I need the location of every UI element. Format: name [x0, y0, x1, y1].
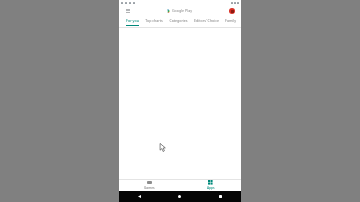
button[interactable]: Recents	[200, 191, 241, 202]
button[interactable]: Family	[222, 16, 239, 27]
staticText: For you	[126, 18, 139, 23]
staticText: Categories	[169, 18, 188, 23]
staticText: Family	[225, 18, 236, 23]
button[interactable]: Back	[119, 191, 159, 202]
button[interactable]: Apps	[180, 179, 241, 191]
button[interactable]: Home	[159, 191, 200, 202]
button[interactable]: Games	[119, 179, 180, 191]
button[interactable]: Open navigation menu	[125, 8, 130, 13]
button[interactable]: Editors' Choice	[191, 16, 222, 27]
staticText: Editors' Choice	[194, 18, 219, 23]
button[interactable]: Categories	[166, 16, 191, 27]
staticText: Top charts	[145, 18, 163, 23]
staticText: Apps	[207, 186, 215, 190]
button[interactable]: For you	[123, 16, 142, 27]
button[interactable]: Top charts	[142, 16, 166, 27]
staticText: Games	[144, 186, 155, 190]
staticText: Google Play	[172, 8, 193, 13]
button[interactable]: Account	[229, 8, 235, 14]
